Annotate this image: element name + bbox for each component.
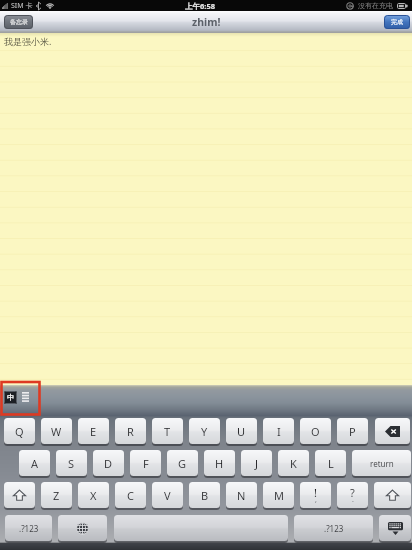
staticText: T [164, 424, 171, 439]
button[interactable]: J [241, 450, 272, 476]
staticText: 中 [7, 393, 14, 402]
staticText: R [127, 424, 134, 439]
button[interactable]: .?123 [294, 515, 373, 541]
staticText: F [143, 456, 149, 471]
staticText: I [277, 424, 281, 439]
staticText: ? [350, 485, 355, 500]
staticText: , [315, 495, 317, 505]
button[interactable]: 我是强小米. [0, 33, 412, 385]
button[interactable]: Switch language [58, 515, 107, 541]
button[interactable]: Input method [4, 391, 17, 404]
staticText: 没有在充电 [358, 1, 393, 10]
button[interactable]: X [78, 482, 109, 508]
staticText: W [51, 424, 62, 439]
staticText: V [164, 488, 171, 503]
button[interactable]: Shift [4, 482, 35, 508]
button[interactable]: U [226, 418, 257, 444]
button[interactable]: Space [114, 515, 288, 541]
staticText: H [215, 456, 224, 471]
button[interactable]: Shift [374, 482, 411, 508]
button[interactable]: 完成 [384, 15, 410, 29]
button[interactable]: V [152, 482, 183, 508]
button[interactable]: D [93, 450, 124, 476]
button[interactable]: P [337, 418, 368, 444]
button[interactable]: ? [337, 482, 368, 508]
staticText: SIM 卡 [11, 1, 33, 11]
button[interactable]: Y [189, 418, 220, 444]
staticText: zhim! [192, 15, 221, 29]
button[interactable]: Hide keyboard [379, 515, 411, 541]
staticText: J [255, 456, 259, 471]
staticText: K [290, 456, 297, 471]
button[interactable]: R [115, 418, 146, 444]
button[interactable]: C [115, 482, 146, 508]
button[interactable]: L [315, 450, 346, 476]
button[interactable]: B [189, 482, 220, 508]
button[interactable]: E [78, 418, 109, 444]
staticText: Y [201, 424, 208, 439]
button[interactable]: K [278, 450, 309, 476]
button[interactable]: Backspace [375, 418, 410, 444]
staticText: Q [15, 424, 24, 439]
button[interactable]: Q [4, 418, 35, 444]
staticText: .?123 [19, 523, 39, 534]
button[interactable]: O [300, 418, 331, 444]
staticText: X [90, 488, 97, 503]
button[interactable]: ! [300, 482, 331, 508]
staticText: 我是强小米. [4, 35, 52, 47]
button[interactable]: Candidates [22, 392, 29, 403]
staticText: ! [314, 485, 317, 500]
staticText: 备忘录 [10, 18, 28, 26]
staticText: 上午6:58 [185, 1, 215, 11]
button[interactable]: H [204, 450, 235, 476]
staticText: C [127, 488, 134, 503]
staticText: U [237, 424, 246, 439]
staticText: S [68, 456, 75, 471]
staticText: D [104, 456, 113, 471]
staticText: G [178, 456, 187, 471]
staticText: return [370, 458, 394, 469]
button[interactable]: S [56, 450, 87, 476]
staticText: .?123 [324, 523, 344, 534]
button[interactable]: M [263, 482, 294, 508]
staticText: . [352, 495, 354, 505]
staticText: Z [53, 488, 60, 503]
button[interactable]: F [130, 450, 161, 476]
staticText: A [31, 456, 39, 471]
button[interactable]: T [152, 418, 183, 444]
button[interactable]: N [226, 482, 257, 508]
button[interactable]: return [352, 450, 411, 476]
staticText: N [237, 488, 246, 503]
button[interactable]: I [263, 418, 294, 444]
staticText: M [274, 488, 284, 503]
staticText: B [201, 488, 209, 503]
button[interactable]: W [41, 418, 72, 444]
button[interactable]: .?123 [5, 515, 52, 541]
button[interactable]: 备忘录 [4, 15, 33, 29]
staticText: O [311, 424, 320, 439]
button[interactable]: G [167, 450, 198, 476]
staticText: 完成 [391, 18, 403, 26]
button[interactable]: A [19, 450, 50, 476]
staticText: E [90, 424, 97, 439]
staticText: L [328, 456, 334, 471]
staticText: P [349, 424, 356, 439]
button[interactable]: Z [41, 482, 72, 508]
